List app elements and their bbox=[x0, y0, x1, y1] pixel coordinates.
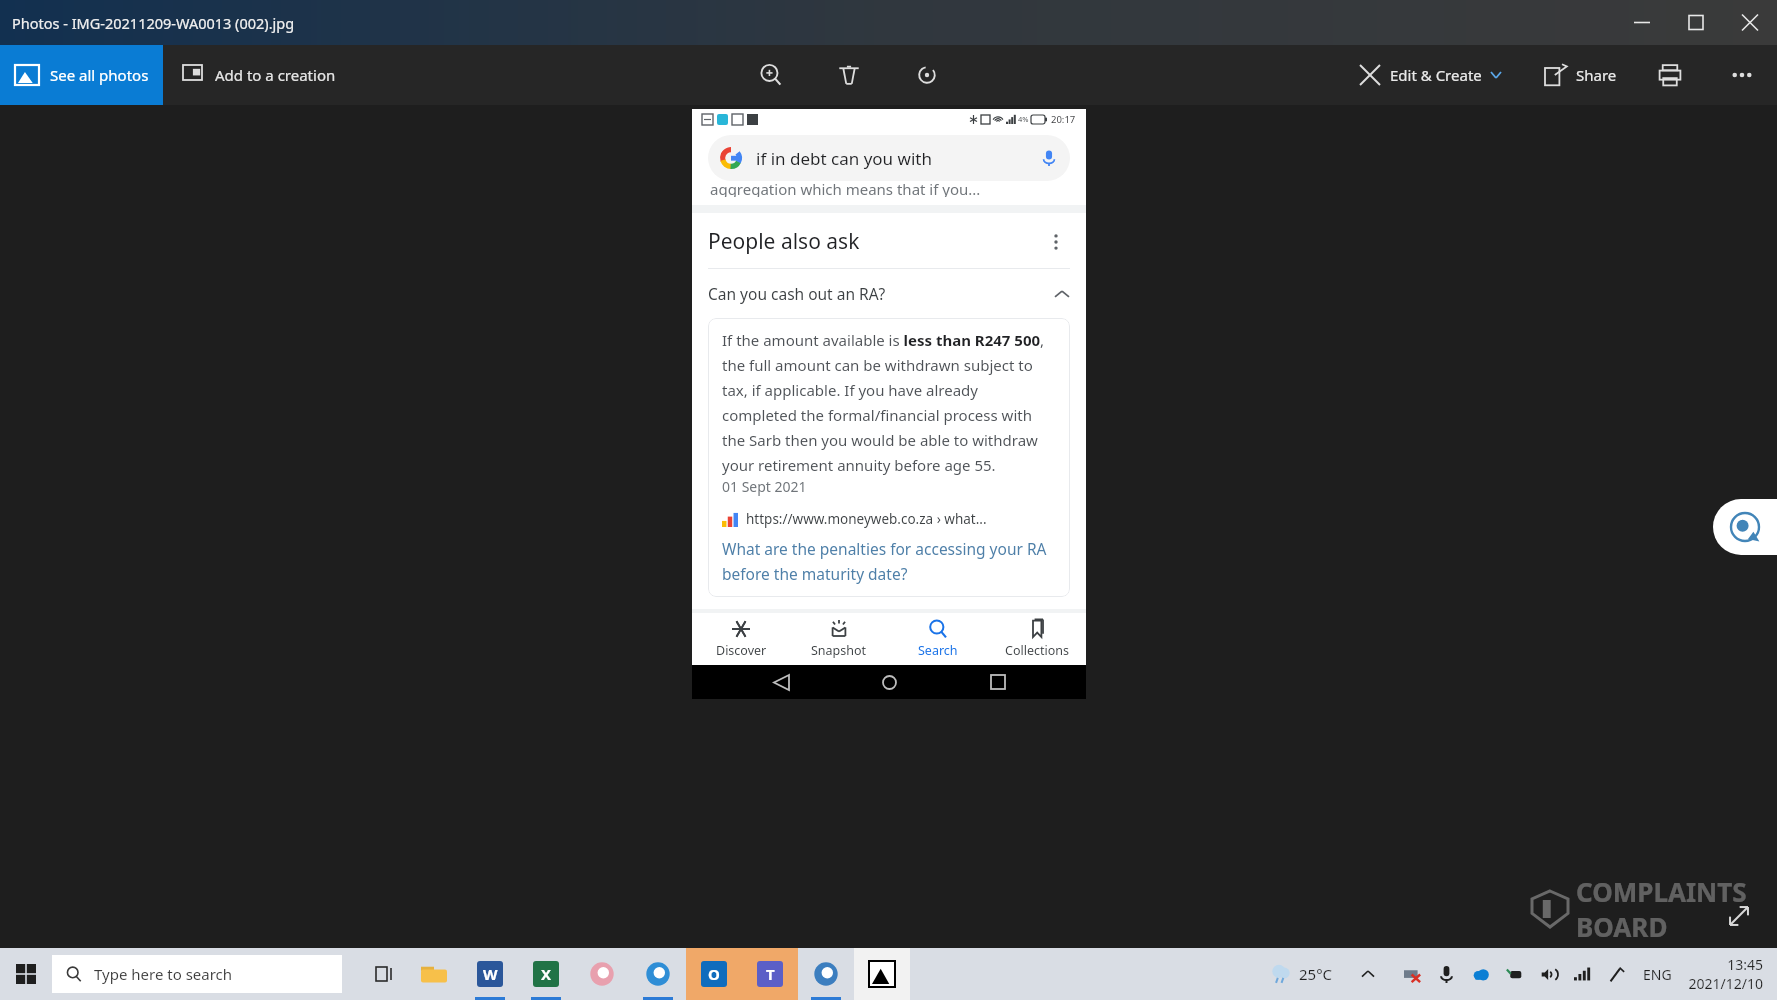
button[interactable]: Recents bbox=[978, 665, 1018, 699]
button[interactable]: Volume bbox=[1531, 957, 1565, 991]
button[interactable]: Photos bbox=[854, 948, 910, 1000]
button[interactable]: 13:45 bbox=[1688, 955, 1763, 993]
button[interactable]: More options bbox=[1042, 228, 1070, 256]
staticText: Type here to search bbox=[94, 964, 233, 984]
button[interactable]: Add to a creation bbox=[163, 45, 350, 105]
button[interactable]: Zoom bbox=[752, 56, 790, 94]
button[interactable]: Print bbox=[1651, 56, 1689, 94]
button[interactable]: Restore bbox=[1669, 0, 1723, 45]
staticText: X bbox=[541, 964, 552, 984]
button[interactable]: Chat bbox=[1713, 499, 1777, 555]
button[interactable]: Pen bbox=[1599, 957, 1633, 991]
button[interactable]: Word bbox=[462, 948, 518, 1000]
staticText: BOARD bbox=[1576, 909, 1668, 944]
staticText: Edit & Create bbox=[1390, 65, 1482, 85]
button[interactable]: Excel bbox=[518, 948, 574, 1000]
button[interactable]: Collections bbox=[987, 613, 1086, 665]
staticText: if in debt can you with bbox=[756, 147, 1040, 170]
staticText: T bbox=[766, 964, 775, 984]
staticText: See all photos bbox=[50, 65, 149, 85]
button[interactable]: Snip & Sketch bbox=[574, 948, 630, 1000]
staticText: Collections bbox=[1005, 642, 1069, 659]
button[interactable]: Minimize bbox=[1615, 0, 1669, 45]
staticText: If the amount available is less than R24… bbox=[722, 330, 1056, 475]
staticText: Add to a creation bbox=[215, 65, 336, 85]
button[interactable]: Microphone bbox=[1429, 957, 1463, 991]
button[interactable]: Start bbox=[0, 948, 52, 1000]
staticText: O bbox=[708, 964, 720, 984]
button[interactable]: Can you cash out an RA? bbox=[708, 269, 1070, 318]
button[interactable]: Edit & Create bbox=[1348, 45, 1512, 105]
staticText: aggregation which means that if you... bbox=[710, 179, 981, 197]
other: Voice search bbox=[1040, 149, 1058, 167]
button[interactable]: Delete bbox=[830, 56, 868, 94]
button[interactable]: Edge bbox=[798, 948, 854, 1000]
staticText: 20:17 bbox=[1051, 113, 1076, 126]
staticText: 01 Sept 2021 bbox=[722, 477, 807, 496]
staticText: Share bbox=[1576, 65, 1617, 85]
button[interactable]: ENG bbox=[1643, 965, 1672, 984]
staticText: Photos - IMG-20211209-WA0013 (002).jpg bbox=[12, 13, 295, 33]
button[interactable]: Back bbox=[761, 665, 801, 699]
staticText: 13:45 bbox=[1727, 955, 1763, 974]
button[interactable]: Network status bbox=[1395, 957, 1429, 991]
button[interactable]: Share bbox=[1534, 45, 1627, 105]
button[interactable]: Outlook bbox=[686, 948, 742, 1000]
staticText: 2021/12/10 bbox=[1688, 974, 1763, 993]
button[interactable]: See all photos bbox=[0, 45, 163, 105]
staticText: Search bbox=[918, 642, 958, 659]
button[interactable]: Signal strength bbox=[1565, 957, 1599, 991]
button[interactable]: https://www.moneyweb.co.za › what... bbox=[722, 510, 1056, 528]
button[interactable]: Type here to search bbox=[52, 955, 342, 993]
button[interactable]: Teams bbox=[742, 948, 798, 1000]
staticText: Can you cash out an RA? bbox=[708, 283, 1054, 304]
button[interactable]: Battery bbox=[1497, 957, 1531, 991]
button[interactable]: if in debt can you with bbox=[708, 135, 1070, 181]
button[interactable]: Discover bbox=[692, 613, 790, 665]
button[interactable]: Show hidden icons bbox=[1355, 961, 1381, 987]
button[interactable]: Rotate bbox=[908, 56, 946, 94]
staticText: People also ask bbox=[708, 227, 1042, 256]
button[interactable]: Search bbox=[888, 613, 987, 665]
staticText: Discover bbox=[716, 642, 767, 659]
button[interactable]: Task view bbox=[360, 951, 406, 997]
staticText: 4% bbox=[1018, 114, 1029, 124]
staticText: Snapshot bbox=[811, 642, 867, 659]
staticText: 25°C bbox=[1299, 964, 1333, 984]
button[interactable]: OneDrive bbox=[1463, 957, 1497, 991]
button[interactable]: Snapshot bbox=[790, 613, 888, 665]
button[interactable]: Home bbox=[869, 665, 909, 699]
button[interactable]: Expand bbox=[1723, 900, 1755, 932]
button[interactable]: Close bbox=[1723, 0, 1777, 45]
button[interactable]: Internet Explorer bbox=[630, 948, 686, 1000]
staticText: W bbox=[483, 964, 498, 984]
button[interactable]: What are the penalties for accessing you… bbox=[722, 538, 1056, 585]
staticText: https://www.moneyweb.co.za › what... bbox=[746, 510, 987, 528]
button[interactable]: More options bbox=[1723, 56, 1761, 94]
staticText: COMPLAINTS bbox=[1576, 874, 1747, 909]
button[interactable]: File Explorer bbox=[406, 948, 462, 1000]
